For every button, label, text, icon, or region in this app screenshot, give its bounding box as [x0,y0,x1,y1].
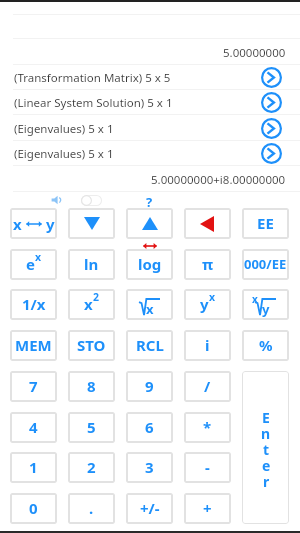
button[interactable]: x [10,208,57,239]
staticText: x [209,290,216,304]
button[interactable] [126,208,173,239]
staticText: 5.00000000 [223,45,286,61]
button[interactable]: 4 [10,412,57,443]
button[interactable]: 7 [10,371,57,402]
staticText: x [84,294,93,314]
button[interactable]: +/- [126,493,173,524]
button[interactable]: 9 [126,371,173,402]
staticText: 2 [87,457,96,477]
button[interactable]: MEM [10,330,57,361]
button[interactable]: (Transformation Matrix) 5 x 5 [0,65,300,90]
staticText: * [203,417,212,437]
staticText: ? [146,193,153,207]
staticText: + [203,498,212,518]
button[interactable]: 000/EE [242,249,289,280]
staticText: RCL [136,335,164,355]
staticText: (Linear System Solution) 5 x 1 [14,95,173,111]
button[interactable]: 0 [10,493,57,524]
button[interactable]: 2 [68,452,115,483]
staticText: x [146,300,154,318]
staticText: ln [84,254,99,274]
staticText: STO [77,335,106,355]
staticText: 2 [93,290,100,304]
button[interactable]: log [126,249,173,280]
staticText: +/- [140,498,160,518]
button[interactable]: E [242,371,289,524]
button[interactable]: / [184,371,231,402]
button[interactable]: π [184,249,231,280]
button[interactable]: + [184,493,231,524]
staticText: 5.00000000+i8.00000000 [151,172,286,188]
button[interactable]: ln [68,249,115,280]
staticText: 4 [29,417,38,437]
staticText: e [26,254,35,274]
staticText: 0 [29,498,38,518]
staticText: log [138,254,162,274]
staticText: . [89,498,94,518]
button[interactable]: % [242,330,289,361]
button[interactable]: . [68,493,115,524]
staticText: 000/EE [244,255,287,273]
button[interactable]: STO [68,330,115,361]
button[interactable]: e [10,249,57,280]
button[interactable]: x [126,289,173,320]
staticText: 5 [87,417,96,437]
button[interactable]: (Eigenvalues) 5 x 1 [0,116,300,141]
button[interactable]: EE [242,208,289,239]
staticText: y [46,214,55,234]
staticText: / [204,376,211,396]
button[interactable]: 8 [68,371,115,402]
staticText: i [205,335,210,355]
staticText: 8 [87,376,96,396]
staticText: EE [257,213,274,233]
button[interactable]: 6 [126,412,173,443]
button[interactable] [68,208,115,239]
button[interactable]: x [68,289,115,320]
staticText: 1 [29,457,38,477]
button[interactable]: RCL [126,330,173,361]
staticText: y [200,294,209,314]
staticText: x [13,214,22,234]
button[interactable]: (Eigenvalues) 5 x 1 [0,141,300,166]
button[interactable]: 3 [126,452,173,483]
staticText: - [205,457,210,477]
button[interactable]: * [184,412,231,443]
button[interactable]: (Linear System Solution) 5 x 1 [0,90,300,115]
staticText: n [261,424,271,440]
staticText: 3 [145,457,154,477]
staticText: 9 [145,376,154,396]
staticText: (Eigenvalues) 5 x 1 [14,121,114,137]
button[interactable]: i [184,330,231,361]
button[interactable]: y [184,289,231,320]
staticText: e [262,456,271,472]
staticText: E [262,408,270,424]
staticText: y [262,300,270,318]
staticText: 6 [145,417,154,437]
staticText: (Eigenvalues) 5 x 1 [14,146,114,162]
staticText: % [259,335,273,355]
staticText: x [35,250,42,264]
staticText: t [263,440,270,456]
staticText: x [252,292,258,306]
staticText: MEM [15,335,52,355]
button[interactable]: 5 [68,412,115,443]
button[interactable] [184,208,231,239]
button[interactable]: 1 [10,452,57,483]
button[interactable]: - [184,452,231,483]
button[interactable]: 1/x [10,289,57,320]
button[interactable]: ? [143,193,156,207]
staticText: 1/x [22,294,46,314]
button[interactable]: Toggle [81,195,102,206]
button[interactable]: Sound [49,193,65,207]
staticText: (Transformation Matrix) 5 x 5 [14,70,171,86]
staticText: π [202,254,214,274]
button[interactable]: x [242,289,289,320]
staticText: 7 [29,376,38,396]
staticText: r [263,472,270,488]
